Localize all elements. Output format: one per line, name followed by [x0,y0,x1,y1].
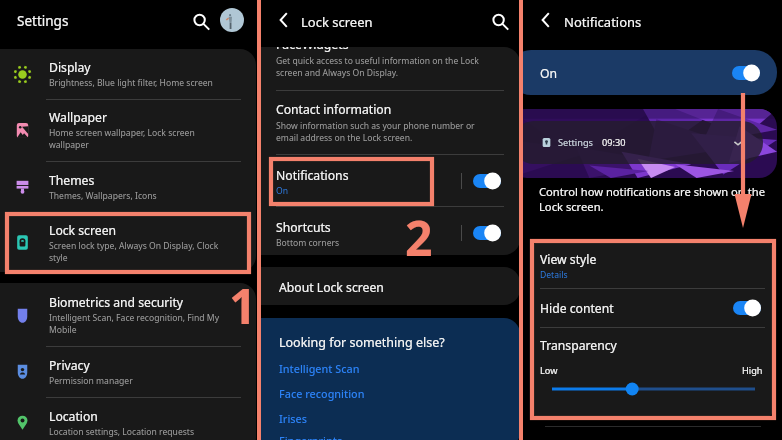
button[interactable]: Face recognition [279,386,365,401]
button[interactable]: Fingerprints [279,433,343,440]
staticText: Settings [558,136,593,149]
staticText: Irises [279,411,307,426]
staticText: Display [49,59,91,76]
staticText: Location settings, Location requests [49,426,195,438]
button[interactable]: Display [0,49,256,100]
staticText: High [742,364,763,377]
staticText: Privacy [49,357,90,374]
staticText: Details [540,269,568,281]
staticText: Permission manager [49,375,133,387]
button[interactable] [523,50,777,95]
staticText: email address on the Lock screen. [276,132,413,144]
staticText: Low [540,364,558,377]
button[interactable]: Intelligent Scan [279,361,360,376]
staticText: Control how notifications are shown on t… [539,184,765,199]
staticText: Contact information [276,101,392,118]
button[interactable]: Wallpaper [0,100,256,161]
staticText: wallpaper [49,139,89,151]
staticText: Brightness, Blue light filter, Home scre… [49,77,213,89]
staticText: Mobile [49,324,77,336]
button[interactable]: Toggle on [473,224,501,242]
button[interactable]: Notifications [261,155,519,206]
staticText: screen and Always On Display. [276,67,399,79]
staticText: About Lock screen [279,279,384,296]
button[interactable]: Privacy [0,347,256,397]
button[interactable]: Search [487,9,513,35]
staticText: style [49,252,68,264]
button[interactable]: Search [188,9,214,35]
staticText: Notifications [276,167,349,184]
staticText: Biometrics and security [49,294,184,311]
staticText: Fingerprints [279,433,343,440]
staticText: View style [540,251,597,268]
staticText: Intelligent Scan, Face recognition, Find… [49,312,220,324]
button[interactable]: Biometrics and security [0,285,256,346]
button[interactable]: View style [531,244,774,288]
button[interactable]: Toggle on [732,64,760,82]
staticText: Face recognition [279,386,365,401]
staticText: Themes, Wallpapers, Icons [49,190,157,202]
staticText: Screen lock type, Always On Display, Clo… [49,240,219,252]
staticText: Location [49,408,98,425]
button[interactable]: Contact information [276,101,506,149]
button[interactable]: Lock screen [0,213,256,272]
button[interactable]: Toggle on [733,299,761,317]
staticText: FaceWidgets [276,47,349,53]
button[interactable]: Back [271,7,297,33]
staticText: Lock screen. [539,199,604,214]
staticText: On [276,185,289,197]
staticText: Get quick access to useful information o… [276,55,479,67]
staticText: Lock screen [301,13,373,31]
button[interactable]: Back [533,7,559,33]
staticText: Intelligent Scan [279,361,360,376]
staticText: 09:30 [602,136,626,149]
staticText: On [540,65,558,82]
button[interactable]: Shortcuts [261,207,519,255]
staticText: Home screen wallpaper, Lock screen [49,127,195,139]
staticText: Transparency [540,337,617,354]
button[interactable]: Irises [279,411,307,426]
button[interactable]: Profile [220,8,244,32]
staticText: 2 [405,205,433,270]
staticText: Shortcuts [276,219,331,236]
staticText: Settings [17,12,69,30]
staticText: Notifications [564,13,642,31]
button[interactable]: Settings [17,12,69,30]
staticText: 1 [229,273,257,338]
staticText: Looking for something else? [279,334,445,351]
staticText: Lock screen [49,222,117,239]
button[interactable]: Toggle on [473,172,501,190]
staticText: Wallpaper [49,109,107,126]
staticText: Hide content [540,300,614,317]
button[interactable]: Themes [0,162,256,212]
button[interactable]: Transparency slider [552,381,755,397]
button[interactable] [261,267,519,305]
button[interactable]: Location [0,398,256,440]
button[interactable]: Hide content [531,289,774,327]
button[interactable]: FaceWidgets [276,47,506,94]
staticText: Themes [49,172,95,189]
staticText: Show information such as your phone numb… [276,120,475,132]
button[interactable]: Lock screen [301,13,373,31]
staticText: Bottom corners [276,237,340,249]
